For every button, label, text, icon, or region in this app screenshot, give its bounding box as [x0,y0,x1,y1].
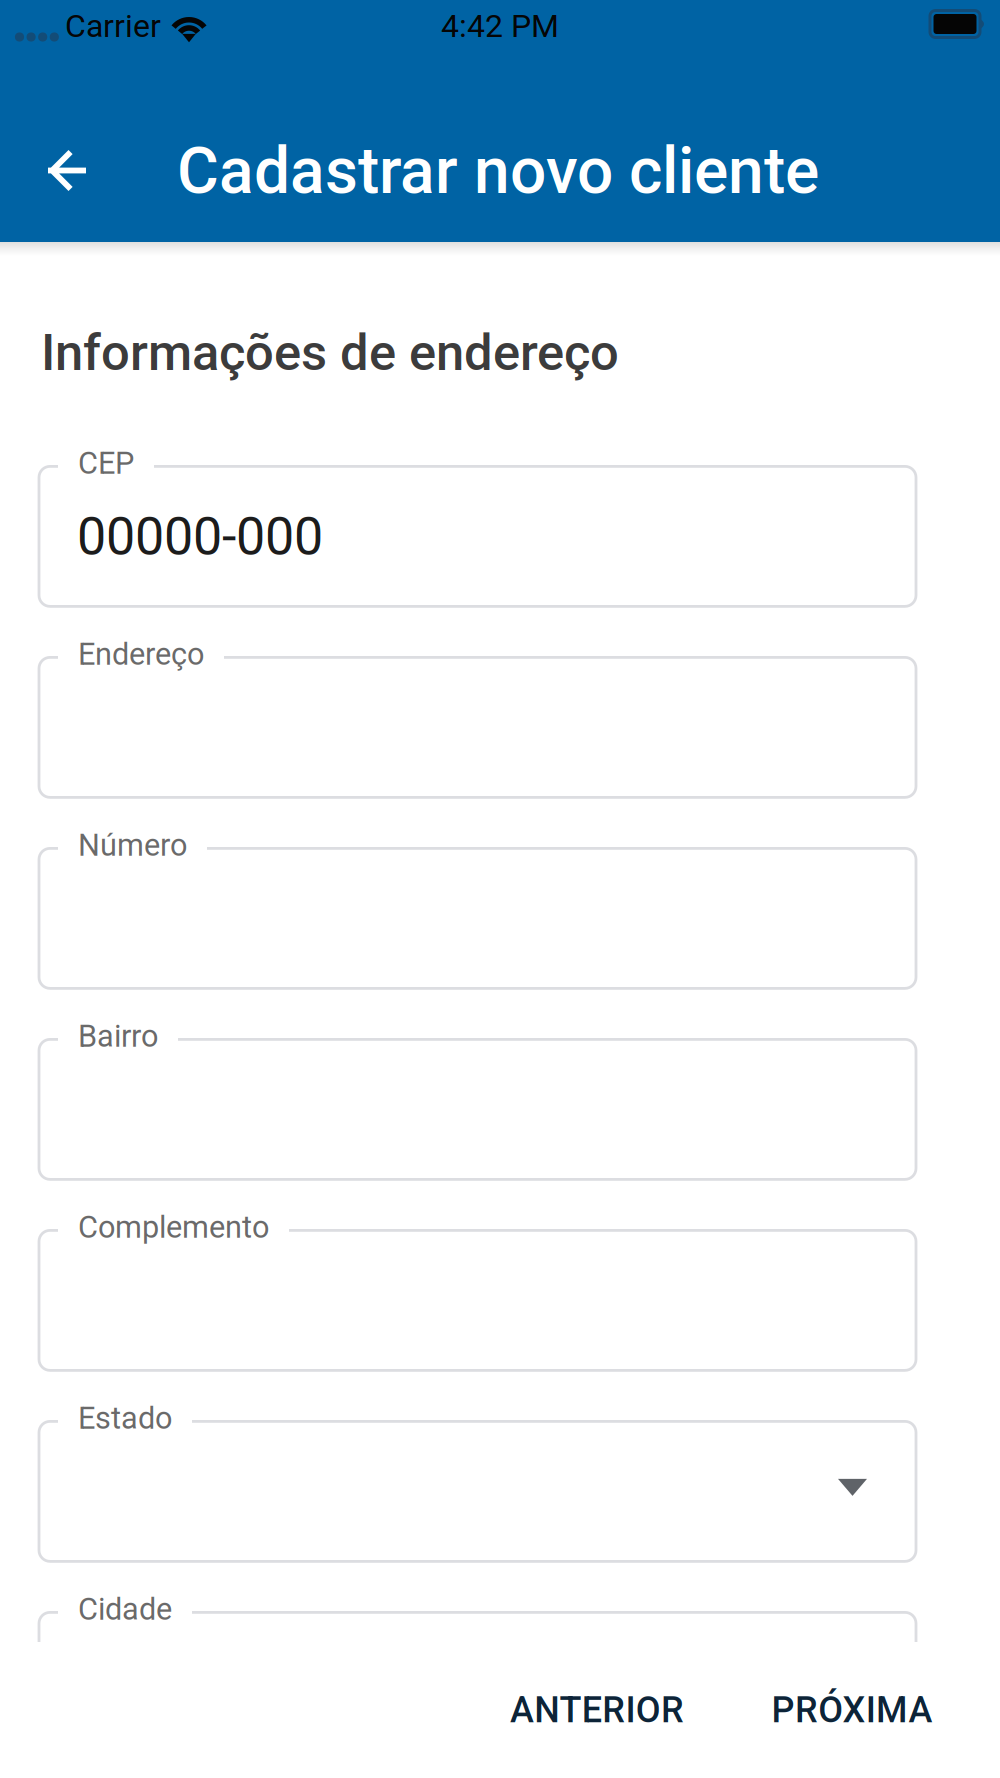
staticText: Complemento [78,1209,269,1245]
staticText: PRÓXIMA [772,1689,932,1731]
staticText: 4:42 PM [441,7,559,45]
button[interactable]: ANTERIOR [487,1668,707,1752]
button[interactable]: Back [0,116,134,226]
staticText: CEP [78,445,134,481]
staticText: Cadastrar novo cliente [177,133,819,208]
staticText: ANTERIOR [510,1689,684,1731]
button[interactable]: PRÓXIMA [749,1668,955,1752]
staticText: Estado [78,1400,172,1436]
staticText: Bairro [78,1018,158,1054]
staticText: Número [78,827,187,863]
staticText: 00000-000 [77,506,323,567]
staticText: Informações de endereço [41,323,619,382]
staticText: Cidade [78,1591,172,1627]
staticText: Endereço [78,636,204,672]
staticText: Carrier [65,7,161,45]
